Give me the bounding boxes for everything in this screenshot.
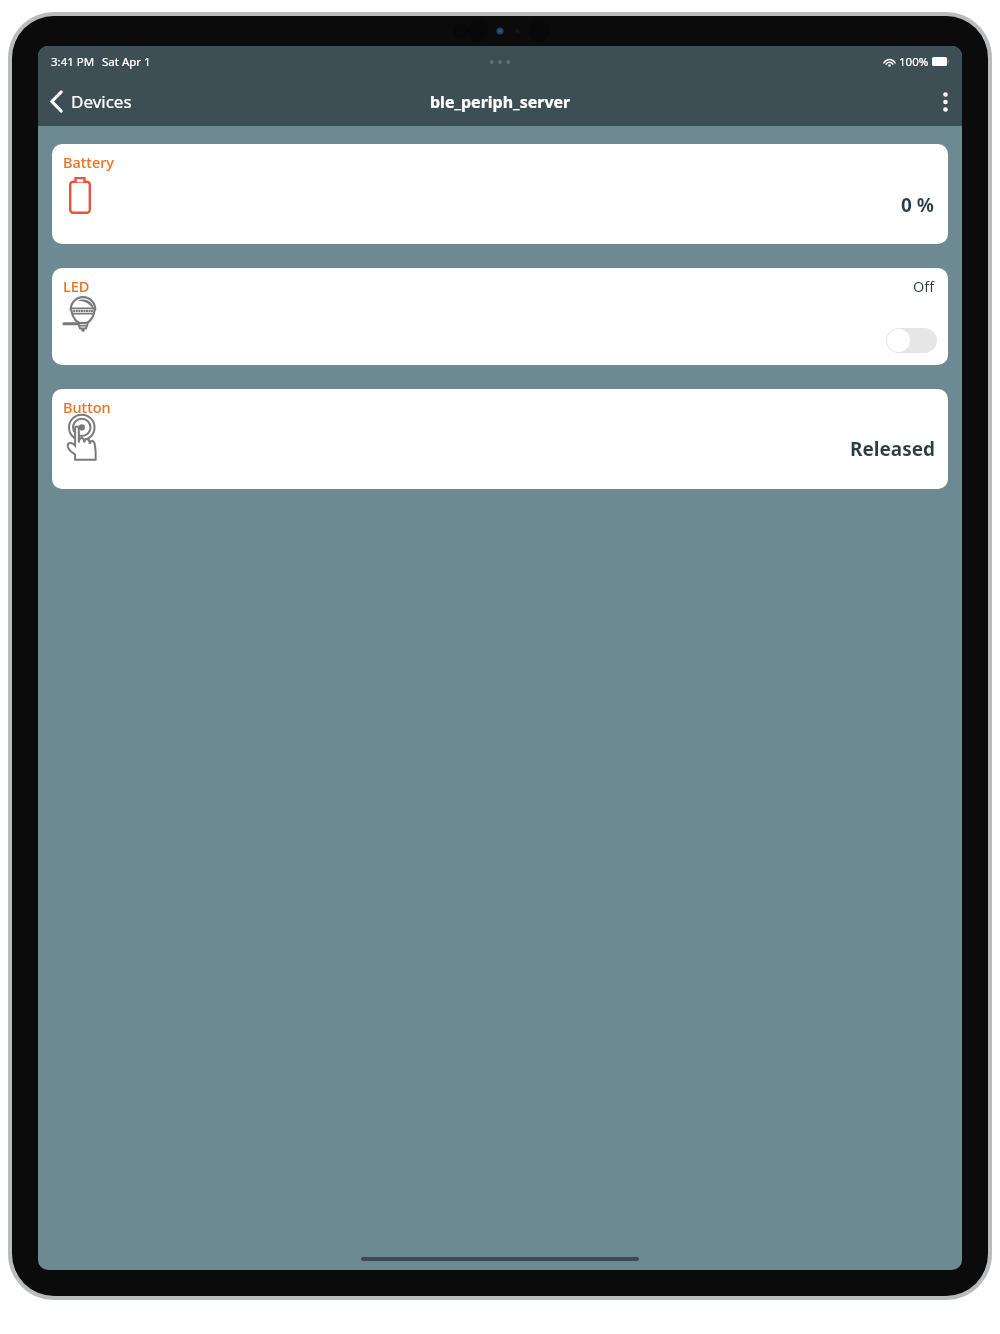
button[interactable]: LED toggle, off [886,328,937,353]
button[interactable]: Button [52,389,948,489]
staticText: 100% [899,54,929,70]
staticText: Battery [63,152,114,172]
staticText: 0 % [901,192,934,218]
staticText: Devices [71,90,132,113]
staticText: Button [63,397,111,417]
button[interactable]: LED [52,268,948,365]
staticText: Sat Apr 1 [102,54,151,70]
button[interactable]: Devices [38,84,142,119]
staticText: Off [913,276,935,296]
button[interactable]: Battery [52,144,948,244]
staticText: Released [850,436,936,462]
staticText: 3:41 PM [51,54,95,70]
button[interactable]: More options [929,81,962,123]
staticText: ble_periph_server [430,91,571,113]
staticText: LED [63,276,90,296]
